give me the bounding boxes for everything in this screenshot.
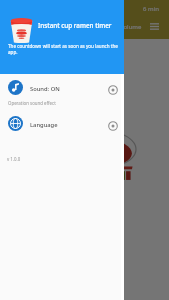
staticText: Language xyxy=(30,121,58,129)
button[interactable]: Options xyxy=(106,83,119,96)
staticText: Volume xyxy=(120,23,142,31)
button[interactable]: Language xyxy=(0,111,124,137)
button[interactable]: Menu xyxy=(148,20,161,33)
staticText: 6 min xyxy=(143,5,159,13)
staticText: The countdown will start as soon as you … xyxy=(8,43,120,56)
staticText: Operation sound effect xyxy=(8,100,56,106)
button[interactable]: Sound: ON xyxy=(0,75,124,101)
staticText: Sound: ON xyxy=(30,85,60,93)
staticText: v 1.0.0 xyxy=(7,156,21,162)
staticText: Instant cup ramen timer xyxy=(38,21,112,30)
button[interactable]: Options xyxy=(106,119,119,132)
